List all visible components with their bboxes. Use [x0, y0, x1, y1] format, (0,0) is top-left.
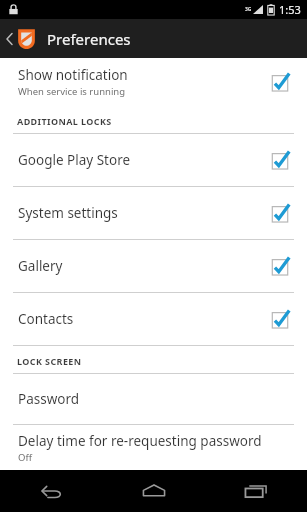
staticText: LOCK SCREEN: [17, 355, 82, 367]
button[interactable]: Google Play Store: [0, 134, 307, 186]
button[interactable]: Toggle: [267, 147, 293, 173]
button[interactable]: Navigate up: [0, 24, 38, 54]
button[interactable]: Home: [103, 470, 205, 512]
staticText: System settings: [18, 204, 118, 222]
staticText: Google Play Store: [18, 151, 131, 169]
staticText: Password: [18, 390, 80, 408]
staticText: 3G: [245, 6, 252, 13]
staticText: Gallery: [18, 257, 63, 275]
staticText: Off: [18, 451, 32, 464]
staticText: Delay time for re-requesting password: [18, 432, 262, 450]
button[interactable]: Recent apps: [205, 470, 307, 512]
staticText: Show notification: [18, 66, 128, 84]
button[interactable]: Toggle: [267, 306, 293, 332]
button[interactable]: Gallery: [0, 240, 307, 292]
button[interactable]: Back: [0, 470, 103, 512]
button[interactable]: Contacts: [0, 293, 307, 345]
staticText: Preferences: [47, 29, 131, 49]
staticText: When service is running: [18, 85, 126, 98]
button[interactable]: Toggle: [267, 69, 293, 95]
button[interactable]: Show notification: [0, 58, 307, 106]
staticText: Contacts: [18, 310, 74, 328]
staticText: 1:53: [279, 2, 301, 17]
button[interactable]: System settings: [0, 187, 307, 239]
button[interactable]: Delay time for re-requesting password: [0, 425, 307, 470]
button[interactable]: Toggle: [267, 253, 293, 279]
staticText: ADDITIONAL LOCKS: [17, 115, 112, 127]
button[interactable]: Password: [0, 374, 307, 424]
button[interactable]: Toggle: [267, 200, 293, 226]
